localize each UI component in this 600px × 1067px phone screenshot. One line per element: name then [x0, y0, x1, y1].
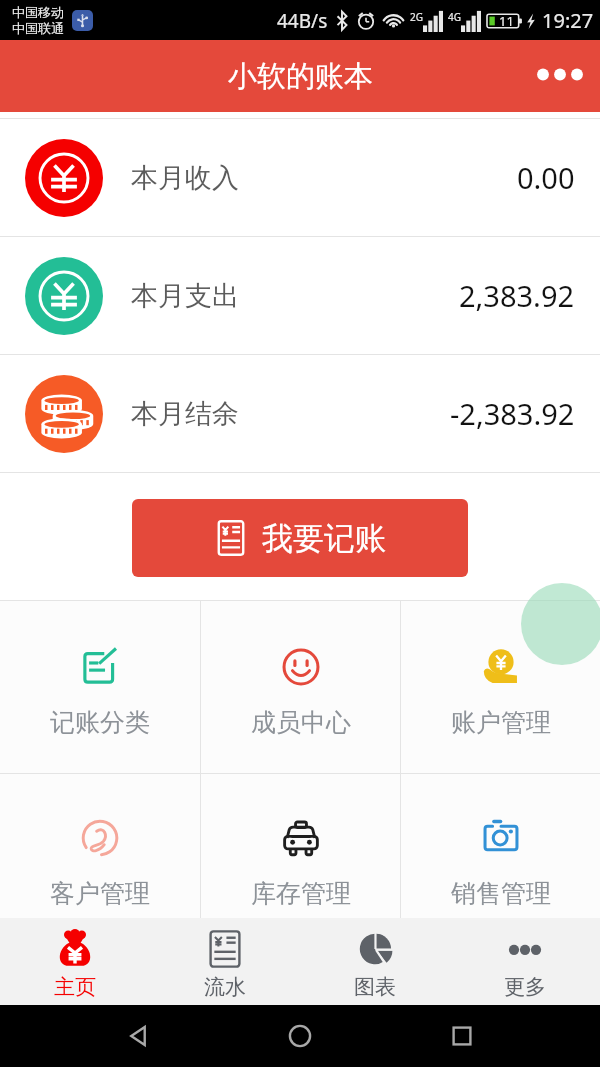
button[interactable]: 本月支出	[0, 237, 600, 354]
button[interactable]: Home	[276, 1012, 324, 1060]
staticText: 库存管理	[251, 878, 351, 909]
staticText: 19:27	[542, 7, 594, 34]
staticText: 账户管理	[451, 707, 551, 738]
button[interactable]: 图表	[300, 918, 450, 1005]
staticText: 2G	[410, 10, 423, 24]
staticText: 4G	[448, 10, 461, 24]
button[interactable]: Recents	[438, 1012, 486, 1060]
button[interactable]: 账户管理	[401, 601, 600, 773]
staticText: 记账分类	[50, 707, 150, 738]
staticText: 客户管理	[50, 878, 150, 909]
staticText: 11	[499, 12, 514, 30]
staticText: 更多	[504, 974, 546, 1000]
button[interactable]: 成员中心	[201, 601, 400, 773]
button[interactable]: 本月收入	[0, 119, 600, 236]
button[interactable]: Back	[114, 1012, 162, 1060]
staticText: 中国联通	[12, 20, 64, 36]
staticText: 销售管理	[451, 878, 551, 909]
staticText: -2,383.92	[450, 394, 575, 433]
staticText: 成员中心	[251, 707, 351, 738]
staticText: 我要记账	[262, 519, 386, 558]
staticText: 流水	[204, 974, 246, 1000]
button[interactable]: 销售管理	[401, 774, 600, 918]
button[interactable]: 库存管理	[201, 774, 400, 918]
button[interactable]: 记账分类	[0, 601, 200, 773]
staticText: 本月收入	[131, 161, 239, 195]
button[interactable]: More options	[532, 48, 588, 104]
button[interactable]: 主页	[0, 918, 150, 1005]
button[interactable]: 我要记账	[132, 499, 468, 577]
staticText: 本月结余	[131, 397, 239, 431]
staticText: 0.00	[517, 158, 575, 197]
staticText: 中国移动	[12, 4, 64, 20]
staticText: 主页	[54, 974, 96, 1000]
staticText: 44B/s	[277, 8, 328, 34]
button[interactable]: 客户管理	[0, 774, 200, 918]
staticText: 小软的账本	[228, 58, 373, 95]
staticText: 图表	[354, 974, 396, 1000]
button[interactable]: 本月结余	[0, 355, 600, 472]
button[interactable]: 更多	[450, 918, 600, 1005]
staticText: 2,383.92	[459, 276, 575, 315]
staticText: 本月支出	[131, 279, 239, 313]
button[interactable]: 流水	[150, 918, 300, 1005]
